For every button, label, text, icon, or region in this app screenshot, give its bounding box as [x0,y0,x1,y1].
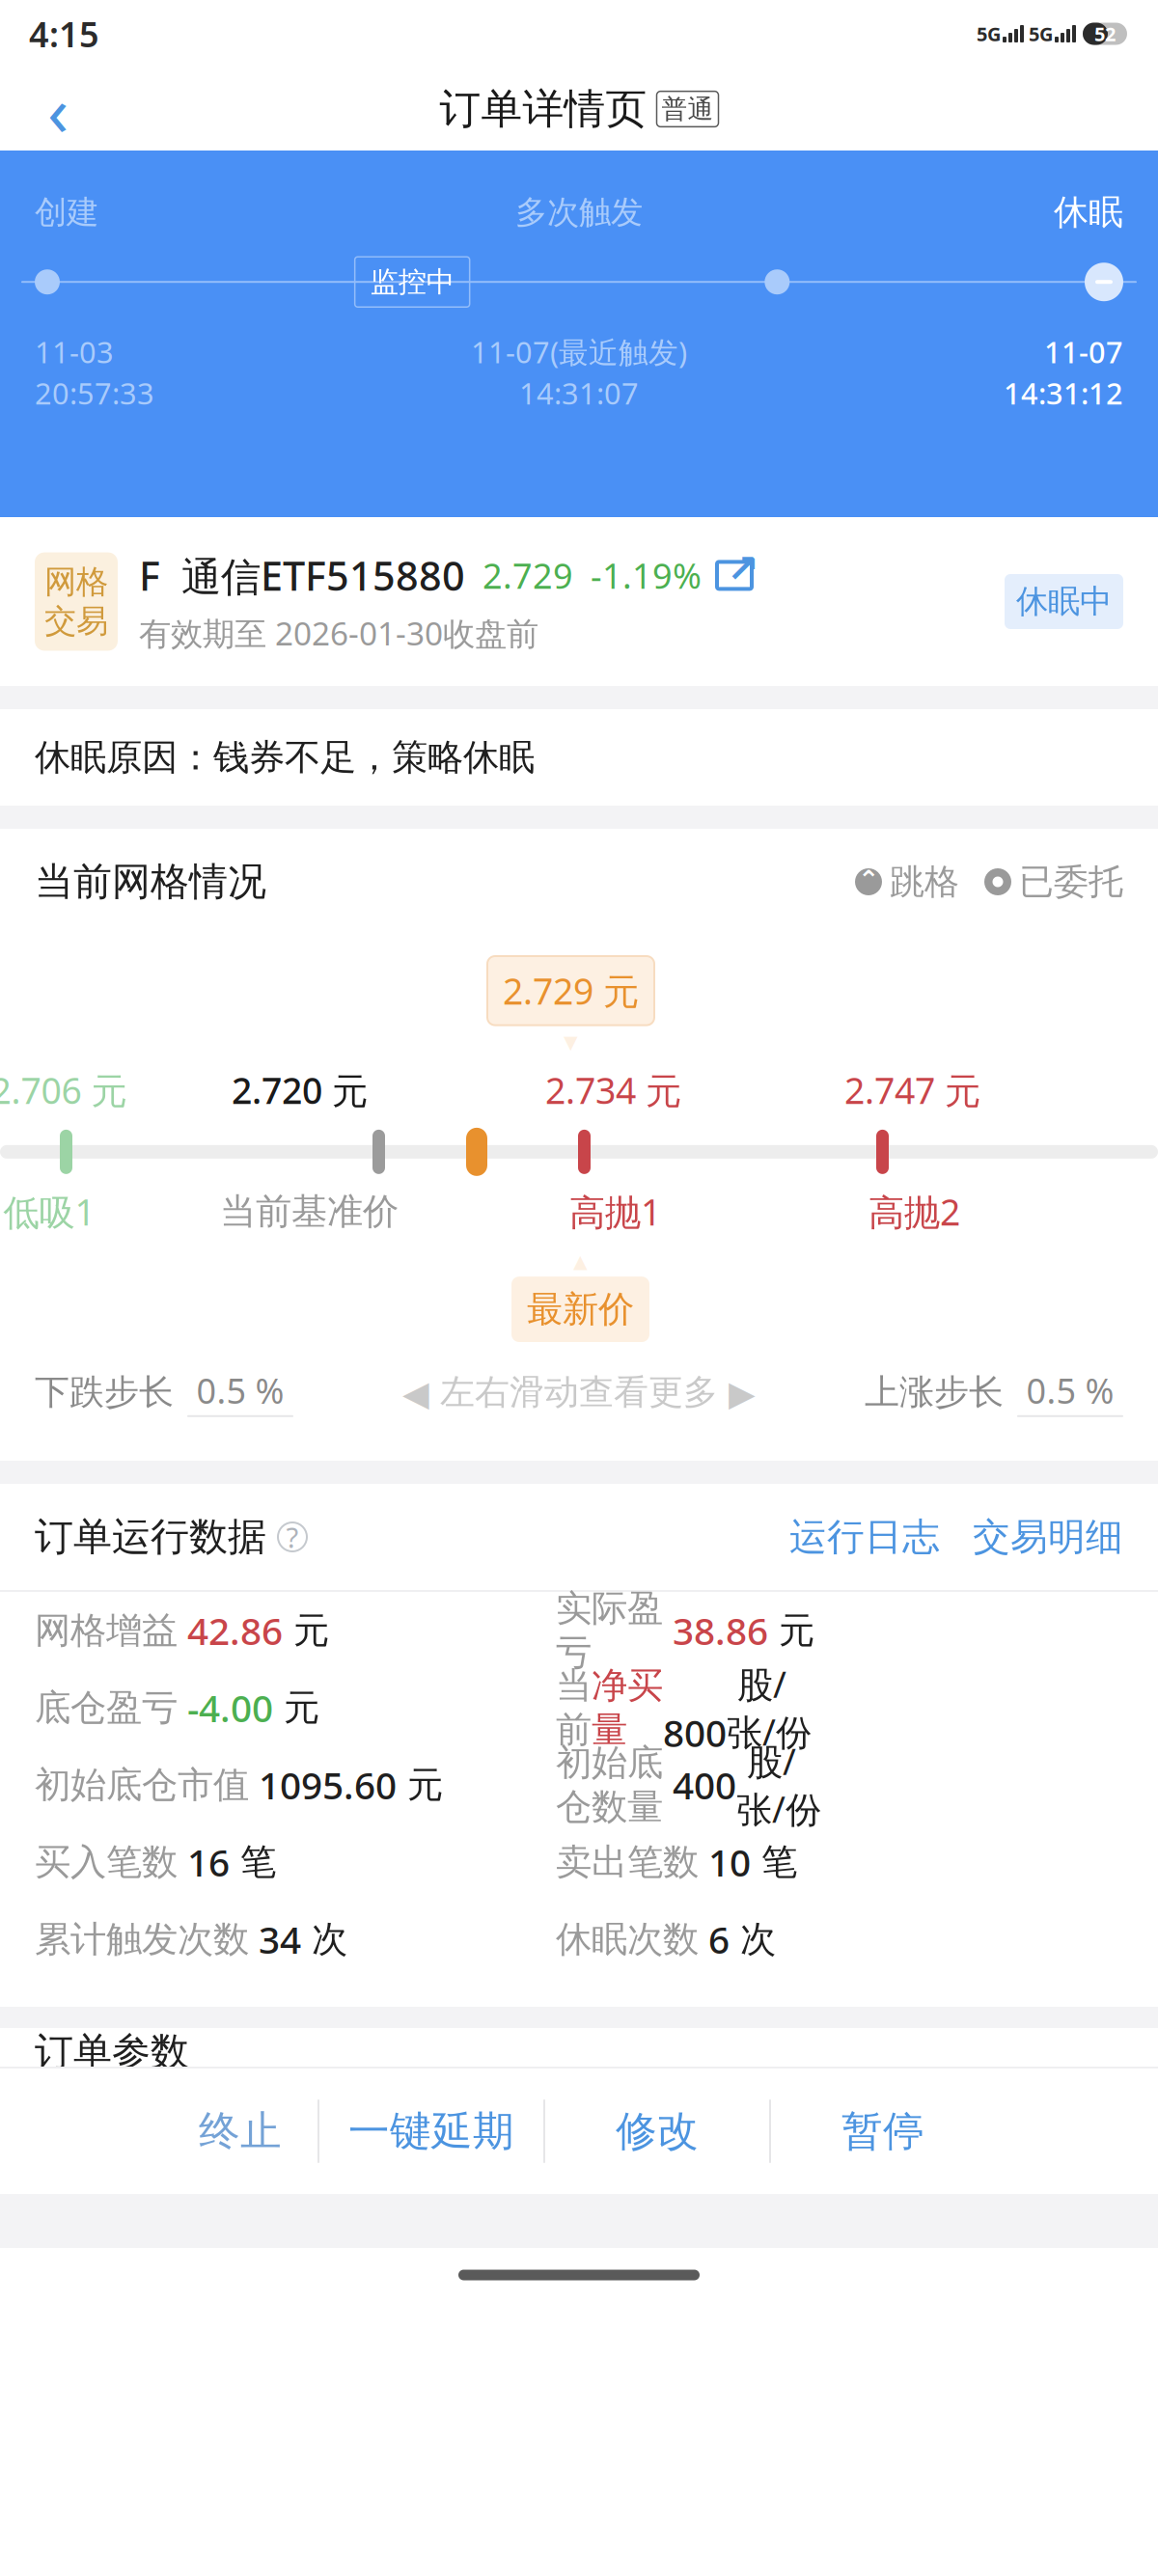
staticText: 2.729 -1.19% [465,552,702,598]
staticText: 交易明细 [973,1514,1123,1560]
button[interactable]: 一键延期 [319,2069,543,2194]
staticText: ↗ [727,547,759,591]
staticText: 元 [397,1763,443,1807]
staticText: 1095.60 [249,1760,397,1810]
staticText: 初始底仓市值 [35,1763,249,1807]
staticText: 次 [730,1917,776,1961]
staticText: 16 [178,1837,230,1887]
staticText: 11-07(最近触发) [471,332,687,371]
staticText: 休眠原因：钱券不足，策略休眠 [35,735,535,780]
staticText: 多次触发 [515,193,643,232]
button[interactable]: 交易明细 [940,1514,1123,1560]
staticText: 订单运行数据 [35,1513,266,1561]
staticText: 52 [1094,21,1116,47]
staticText: 卖出笔数 [556,1840,699,1884]
staticText: 已委托 [1019,860,1123,903]
button[interactable]: Back [19,72,96,146]
staticText: 创建 [35,193,98,232]
staticText: 网格 [44,562,108,602]
staticText: 休眠 [1054,191,1123,234]
staticText: 800 [663,1658,727,1757]
staticText: 11-07 [1044,332,1123,371]
staticText: 当前网格情况 [35,858,266,905]
staticText: 休眠次数 [556,1917,699,1961]
staticText: ◀ 左右滑动查看更多 ▶ [402,1371,756,1413]
staticText: 34 [249,1914,301,1964]
staticText: 14:31:12 [1004,373,1123,413]
staticText: 2.747 元 [844,1066,980,1114]
staticText: 暂停 [841,2106,924,2157]
staticText: 42.86 [178,1606,283,1655]
staticText: 2.720 元 [232,1066,368,1114]
staticText: 休眠中 [1016,582,1112,621]
staticText: 高抛1 [569,1188,661,1236]
staticText: 5G [977,21,1001,47]
staticText: 有效期至 2026-01-30收盘前 [139,612,538,654]
staticText: 净买量 [592,1663,663,1752]
staticText: 10 [699,1837,751,1887]
staticText: 底仓盈亏 [35,1686,178,1730]
staticText: 跳格 [890,860,959,903]
staticText: ? [286,1518,299,1556]
staticText: 2.734 元 [545,1066,681,1114]
staticText: 11-03 [35,332,114,371]
staticText: 订单参数 [35,2028,189,2075]
staticText: 修改 [616,2106,699,2157]
staticText: 订单详情页 [440,84,647,134]
staticText: 初始底仓数量 [556,1741,663,1829]
staticText: 5G [1029,21,1053,47]
staticText: 终止 [199,2106,282,2157]
button[interactable]: 暂停 [771,2069,995,2194]
staticText: 14:31:07 [519,373,639,413]
staticText: 普通 [662,93,714,125]
button[interactable]: 运行日志 [789,1514,940,1560]
staticText: 0.5 % [1026,1367,1114,1413]
staticText: 高抛2 [868,1188,960,1236]
staticText: 下跌步长 [35,1371,174,1413]
staticText: 笔 [751,1840,797,1884]
button[interactable]: 终止 [163,2069,317,2194]
button[interactable]: 修改 [545,2069,769,2194]
staticText: 当前 [556,1663,592,1752]
staticText: 0.5 % [196,1367,284,1413]
staticText: 2.706 元 [0,1066,127,1114]
staticText: ‹ [47,63,69,155]
staticText: 6 [699,1914,730,1964]
staticText: 4:15 [29,11,99,57]
staticText: 次 [301,1917,347,1961]
staticText: ⌃ [858,865,879,895]
staticText: 低吸1 [3,1188,95,1236]
staticText: 股/张/份 [736,1737,821,1833]
staticText: 网格增益 [35,1608,178,1653]
staticText: ▾ [564,1025,578,1057]
button[interactable]: ⌃ [855,860,959,903]
staticText: 一键延期 [348,2106,514,2157]
staticText: 2.729 元 [503,967,639,1015]
staticText: 交易 [44,602,108,641]
staticText: 笔 [230,1840,276,1884]
staticText: F 通信ETF515880 [139,549,465,602]
staticText: 累计触发次数 [35,1917,249,1961]
staticText: 运行日志 [789,1514,940,1560]
staticText: 元 [283,1608,329,1653]
staticText: 实际盈亏 [556,1586,663,1675]
staticText: 元 [768,1608,814,1653]
staticText: 最新价 [527,1287,634,1332]
staticText: 上涨步长 [865,1371,1004,1413]
staticText: 当前基准价 [220,1189,399,1234]
staticText: 38.86 [663,1606,768,1655]
staticText: ▴ [573,1244,588,1277]
staticText: 元 [273,1686,319,1730]
button[interactable]: 已委托 [959,860,1123,903]
staticText: 监控中 [370,265,454,299]
staticText: 股/张/份 [727,1660,812,1756]
staticText: 400 [663,1760,736,1810]
staticText: 买入笔数 [35,1840,178,1884]
staticText: -4.00 [178,1683,273,1732]
staticText: 20:57:33 [35,373,154,413]
